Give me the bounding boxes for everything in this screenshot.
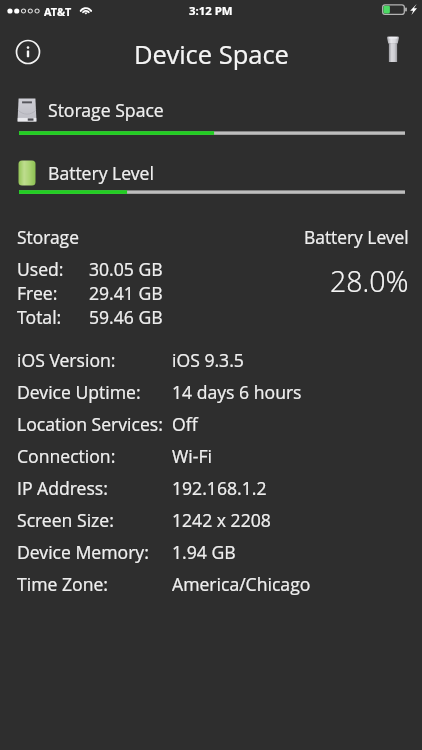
staticText: iOS Version:	[17, 348, 172, 372]
button[interactable]: Info	[10, 34, 46, 70]
staticText: 59.46 GB	[89, 305, 163, 329]
staticText: Free:	[17, 281, 89, 305]
staticText: America/Chicago	[172, 572, 311, 596]
button[interactable]: Time Zone:	[17, 572, 422, 604]
staticText: iOS 9.3.5	[172, 348, 244, 372]
staticText: Device Uptime:	[17, 380, 172, 404]
staticText: Battery Level	[304, 225, 409, 249]
staticText: Used:	[17, 257, 89, 281]
staticText: 1.94 GB	[172, 540, 236, 564]
button[interactable]: Device Uptime:	[17, 380, 422, 412]
staticText: Wi-Fi	[172, 444, 212, 468]
staticText: Screen Size:	[17, 508, 172, 532]
staticText: IP Address:	[17, 476, 172, 500]
button[interactable]: Flashlight	[375, 32, 411, 68]
staticText: 3:12 PM	[189, 3, 233, 19]
button[interactable]: Connection:	[17, 444, 422, 476]
button[interactable]: Device Memory:	[17, 540, 422, 572]
button[interactable]: iOS Version:	[17, 348, 422, 380]
staticText: Time Zone:	[17, 572, 172, 596]
button[interactable]: IP Address:	[17, 476, 422, 508]
staticText: Off	[172, 412, 198, 436]
staticText: 28.0%	[330, 262, 409, 301]
staticText: Storage Space	[48, 98, 164, 122]
staticText: Battery Level	[48, 161, 154, 185]
staticText: Connection:	[17, 444, 172, 468]
staticText: Total:	[17, 305, 89, 329]
staticText: 1242 x 2208	[172, 508, 271, 532]
staticText: Device Memory:	[17, 540, 172, 564]
staticText: Location Services:	[17, 412, 172, 436]
staticText: 30.05 GB	[89, 257, 163, 281]
staticText: 192.168.1.2	[172, 476, 267, 500]
staticText: Storage	[17, 225, 79, 249]
staticText: 29.41 GB	[89, 281, 163, 305]
staticText: Device Space	[134, 37, 289, 72]
button[interactable]: Screen Size:	[17, 508, 422, 540]
staticText: 14 days 6 hours	[172, 380, 302, 404]
staticText: AT&T	[44, 4, 72, 19]
button[interactable]: Location Services:	[17, 412, 422, 444]
